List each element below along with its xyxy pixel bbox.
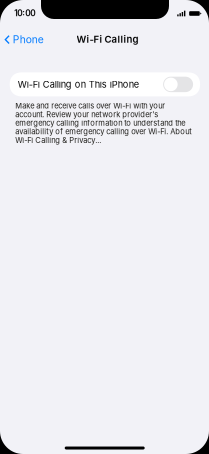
button[interactable]: Phone bbox=[0, 27, 50, 52]
staticText: Wi-Fi Calling on This iPhone bbox=[18, 79, 139, 90]
staticText: Wi-Fi Calling bbox=[76, 33, 138, 45]
staticText: 10:00 bbox=[14, 8, 35, 18]
staticText: Make and receive calls over Wi-Fi with y… bbox=[15, 102, 191, 144]
staticText: Phone bbox=[13, 33, 44, 46]
button[interactable]: Wi-Fi Calling on This iPhone bbox=[10, 72, 200, 96]
